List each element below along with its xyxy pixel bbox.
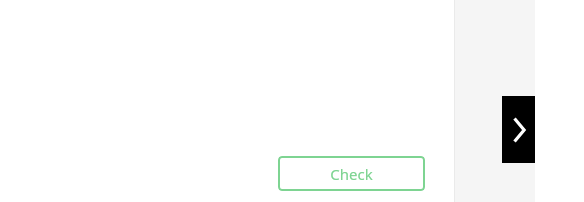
staticText: Check (330, 164, 373, 184)
button[interactable]: Next (502, 96, 535, 163)
button[interactable]: Check (278, 156, 425, 191)
